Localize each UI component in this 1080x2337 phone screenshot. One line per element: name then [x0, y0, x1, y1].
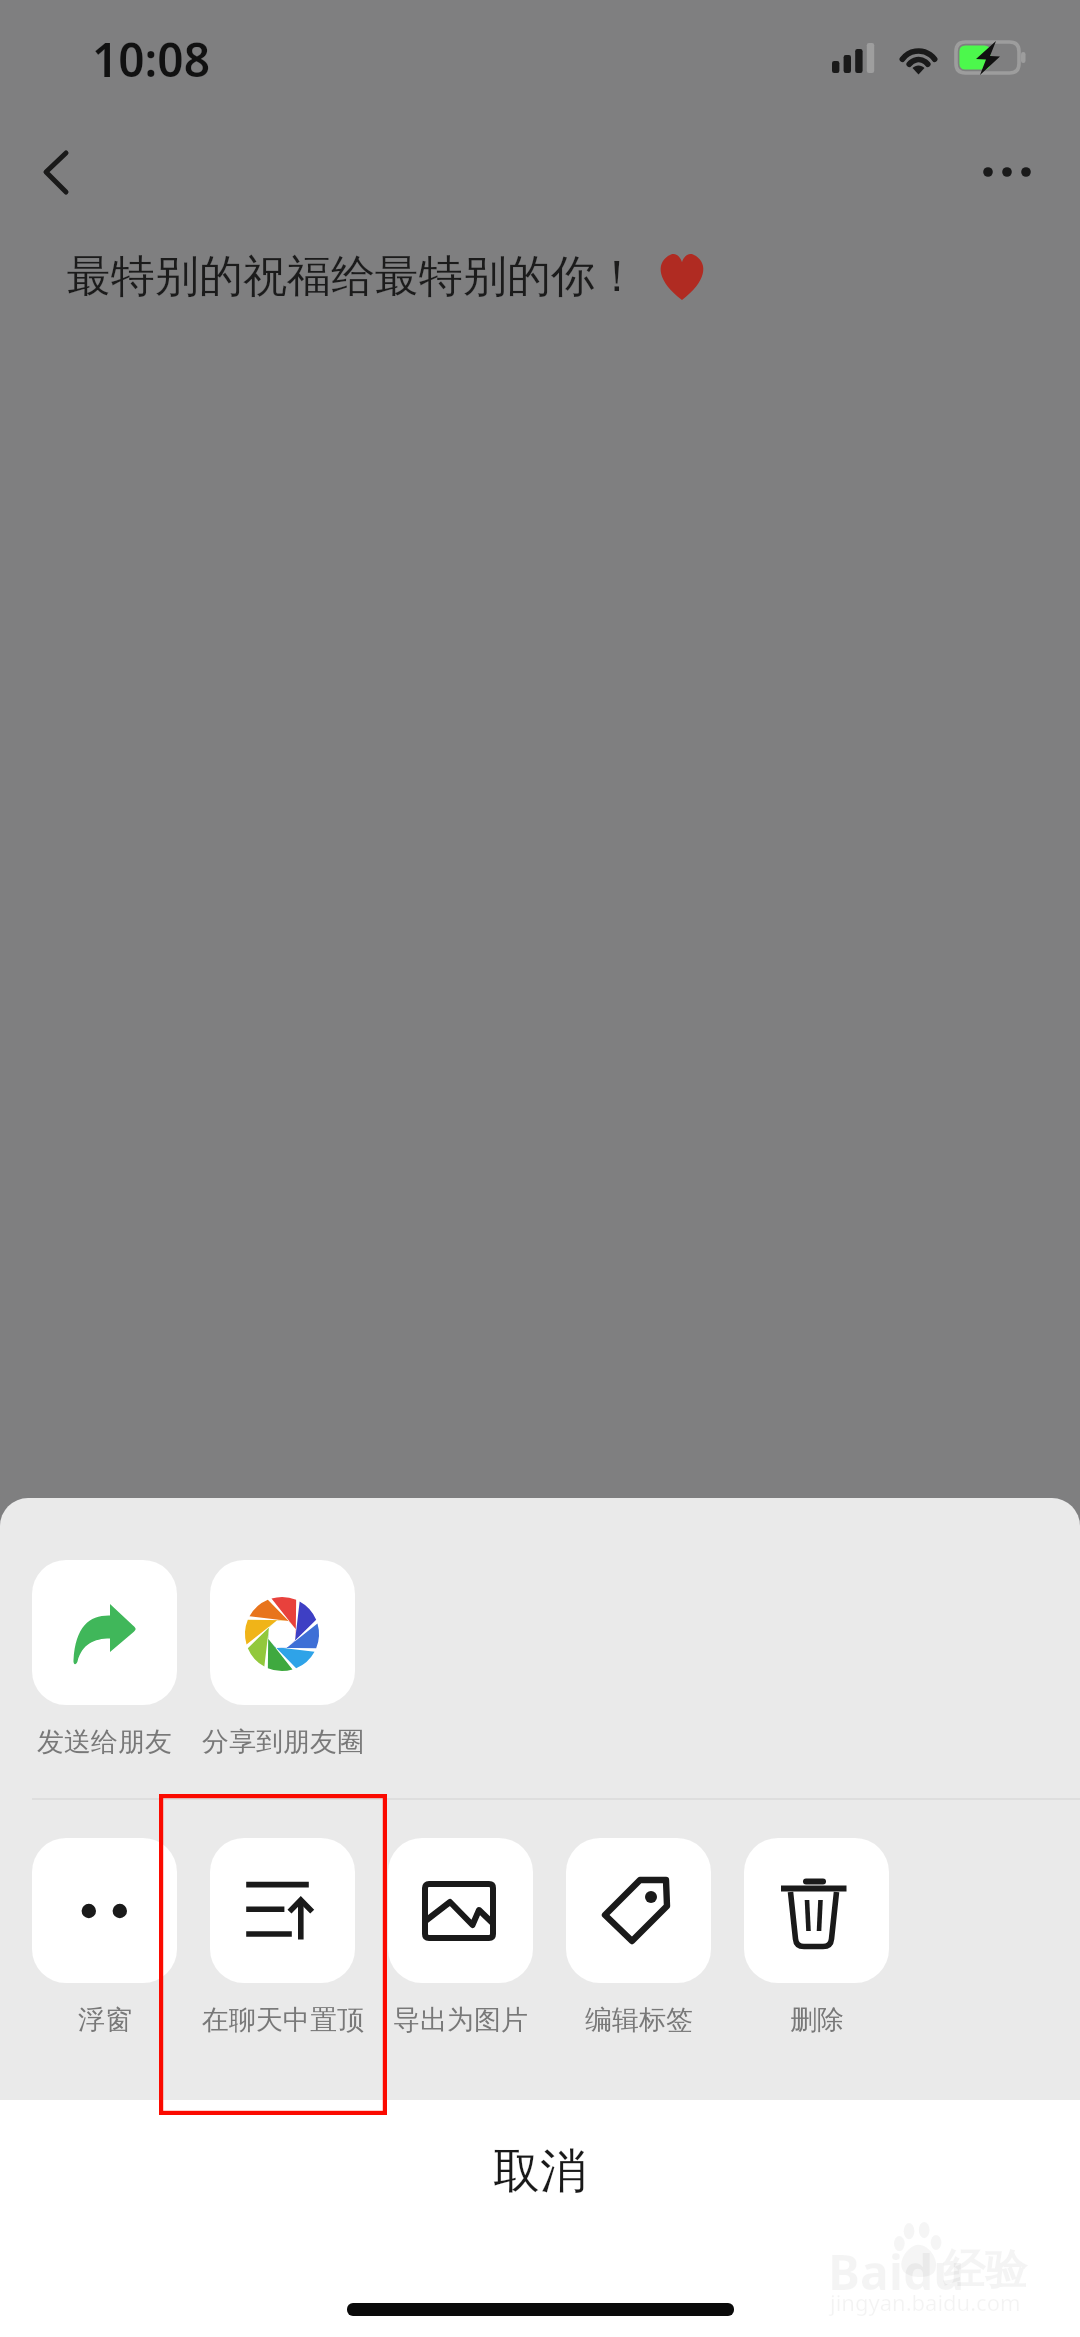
button[interactable]: Back: [12, 128, 100, 216]
button[interactable]: More options: [962, 130, 1046, 214]
staticText: 编辑标签: [585, 2003, 693, 2037]
staticText: 浮窗: [78, 2003, 132, 2037]
staticText: 导出为图片: [393, 2003, 528, 2037]
staticText: 10:08: [92, 28, 210, 91]
button[interactable]: 取消: [0, 2100, 1080, 2242]
staticText: 在聊天中置顶: [202, 2003, 364, 2037]
staticText: 取消: [493, 2142, 587, 2201]
button[interactable]: Pin in chat: [210, 1838, 355, 2037]
staticText: 发送给朋友: [37, 1725, 172, 1759]
staticText: Baidu: [828, 2239, 965, 2304]
staticText: 经验: [943, 2244, 1027, 2297]
staticText: jingyan.baidu.com: [830, 2287, 1021, 2317]
button[interactable]: Share to Moments: [210, 1560, 355, 1759]
staticText: 分享到朋友圈: [202, 1725, 364, 1759]
button[interactable]: Send to friend: [32, 1560, 177, 1759]
button[interactable]: Export as image: [388, 1838, 533, 2037]
staticText: 最特别的祝福给最特别的你！: [67, 249, 639, 304]
staticText: 删除: [790, 2003, 844, 2037]
button[interactable]: Edit tags: [566, 1838, 711, 2037]
button[interactable]: Delete: [744, 1838, 889, 2037]
button[interactable]: Float window: [32, 1838, 177, 2037]
